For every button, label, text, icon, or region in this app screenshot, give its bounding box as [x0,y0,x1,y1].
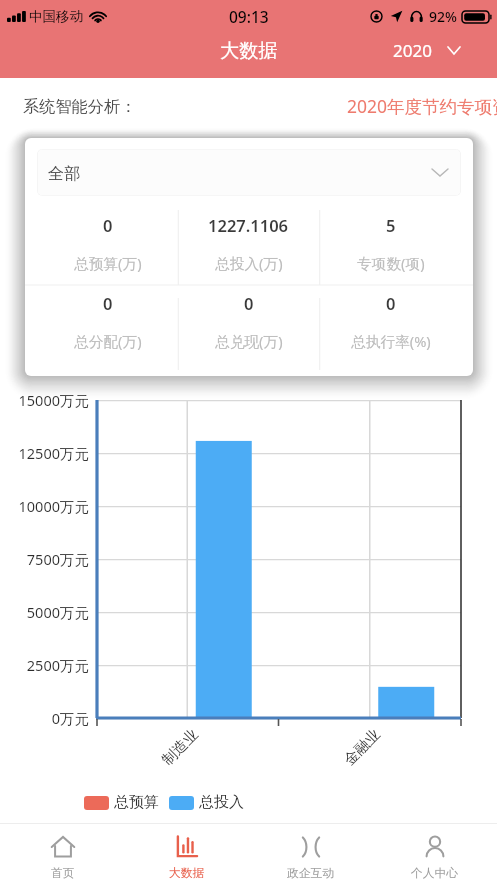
other: 个人中心 [423,835,447,859]
staticText: 92% [429,7,457,26]
button[interactable]: 全部 [37,149,461,196]
staticText: 10000万元 [0,496,89,516]
staticText: 5 [386,214,396,236]
other: 首页 [51,835,75,859]
staticText: 1227.1106 [208,214,289,236]
button[interactable]: 5 [320,196,461,274]
staticText: 个人中心 [411,866,459,881]
staticText: 2020年度节约专项资金 [347,94,497,118]
button[interactable]: 2020 [381,35,497,66]
staticText: 2500万元 [0,655,89,675]
staticText: 首页 [51,866,75,881]
staticText: 0万元 [0,708,89,728]
staticText: 总预算(万) [74,253,142,273]
button[interactable]: 政企互动 [249,824,373,883]
staticText: 总执行率(%) [351,331,431,351]
staticText: 全部 [48,163,81,183]
other: 大数据 [175,835,199,859]
staticText: 总兑现(万) [215,331,283,351]
button[interactable]: 0 [178,274,319,352]
staticText: 0 [103,292,113,314]
button[interactable]: 0 [37,196,178,274]
staticText: 09:13 [229,6,269,27]
staticText: 专项数(项) [357,253,425,273]
staticText: 5000万元 [0,602,89,622]
staticText: 15000万元 [0,390,89,410]
staticText: 中国移动 [29,8,83,25]
staticText: 总投入 [199,793,244,812]
button[interactable]: 个人中心 [373,824,497,883]
button[interactable]: 大数据 [125,824,249,883]
staticText: 7500万元 [0,549,89,569]
staticText: 0 [386,292,396,314]
staticText: 制造业 [158,725,202,769]
staticText: 总投入(万) [215,253,283,273]
staticText: 2020 [393,39,432,62]
staticText: 总分配(万) [74,331,142,351]
staticText: 政企互动 [287,866,335,881]
button[interactable]: 1227.1106 [178,196,319,274]
staticText: 总预算 [114,793,159,812]
staticText: 0 [244,292,254,314]
staticText: 大数据 [169,866,205,881]
staticText: 系统智能分析： [23,96,137,116]
staticText: 大数据 [220,39,278,63]
button[interactable]: 首页 [0,824,125,883]
other: 政企互动 [299,835,323,859]
button[interactable]: 0 [320,274,461,352]
staticText: 金融业 [340,725,384,769]
button[interactable]: 0 [37,274,178,352]
staticText: 12500万元 [0,443,89,463]
staticText: 0 [103,214,113,236]
